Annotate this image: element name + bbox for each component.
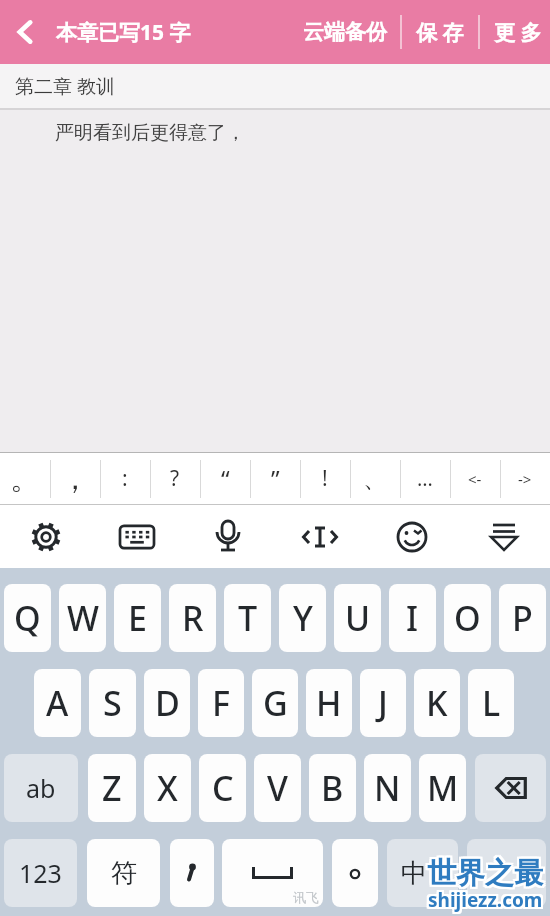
button[interactable] [91,505,182,568]
staticText: shijiezz.com [428,885,543,911]
button[interactable]: H [306,669,352,737]
button[interactable]: K [414,669,460,737]
staticText: D [155,680,180,726]
staticText: 世界之最 [429,855,545,892]
staticText: 世界之最 [427,853,543,890]
button[interactable]: S [89,669,136,737]
staticText: V [267,765,288,811]
staticText: P [512,595,533,641]
button[interactable]: 、 [350,453,400,504]
staticText: B [321,765,344,811]
button[interactable]: 中 [387,839,458,907]
button[interactable]: -> [500,453,550,504]
staticText: Y [293,595,313,641]
button[interactable]: A [34,669,81,737]
button[interactable]: 更 多 [480,0,550,64]
staticText: shijiezz.com [426,885,541,911]
button[interactable] [366,505,458,568]
staticText: 、 [363,464,387,494]
button[interactable]: 。 [0,453,50,504]
button[interactable]: T [224,584,271,652]
button[interactable]: V [254,754,301,822]
staticText: shijiezz.com [426,887,541,913]
button[interactable]: 云端备份 [290,0,400,64]
button[interactable]: C [199,754,246,822]
button[interactable] [0,505,91,568]
staticText: 中 [401,857,427,890]
button[interactable]: J [360,669,406,737]
button[interactable]: N [364,754,411,822]
staticText: : [122,464,128,493]
button[interactable]: ” [250,453,300,504]
button[interactable]: W [59,584,106,652]
button[interactable] [274,505,366,568]
button[interactable]: ! [300,453,350,504]
button[interactable]: Q [4,584,51,652]
staticText: U [345,595,371,641]
button[interactable]: X [144,754,191,822]
staticText: shijiezz.com [428,889,543,915]
staticText: shijiezz.com [430,885,545,911]
button[interactable]: D [144,669,190,737]
button[interactable]: F [198,669,244,737]
button[interactable] [182,505,274,568]
staticText: F [212,680,230,726]
button[interactable]: I [389,584,436,652]
button[interactable]: “ [200,453,250,504]
staticText: R [182,595,204,641]
staticText: H [316,680,342,726]
button[interactable]: 保 存 [402,0,478,64]
staticText: 讯飞 [293,889,319,905]
staticText: ” [271,462,280,495]
button[interactable]: : [100,453,150,504]
staticText: -> [518,469,532,489]
staticText: 保 存 [416,18,464,47]
staticText: 世界之最 [425,857,541,894]
button[interactable]: ab [4,754,78,822]
button[interactable] [332,839,378,907]
button[interactable]: B [309,754,356,822]
button[interactable]: P [499,584,546,652]
staticText: 世界之最 [429,853,545,890]
button[interactable]: ， [50,453,100,504]
button[interactable]: U [334,584,381,652]
staticText: ! [322,464,328,493]
button[interactable] [0,0,50,64]
button[interactable]: Z [88,754,136,822]
button[interactable]: Y [279,584,326,652]
staticText: T [238,595,258,641]
staticText: 。 [10,460,40,498]
staticText: E [128,595,147,641]
staticText: ab [26,771,56,805]
button[interactable]: O [444,584,491,652]
staticText: M [427,765,459,811]
staticText: O [454,595,481,641]
staticText: Q [14,595,41,641]
staticText: 世界之最 [425,855,541,892]
staticText: L [482,680,501,726]
button[interactable] [170,839,214,907]
staticText: 世界之最 [427,857,543,894]
button[interactable] [458,505,550,568]
button[interactable]: 123 [4,839,77,907]
staticText: shijiezz.com [428,887,543,913]
button[interactable]: … [400,453,450,504]
button[interactable]: E [114,584,161,652]
staticText: 云端备份 [303,19,387,45]
staticText: “ [221,462,230,495]
staticText: G [263,680,288,726]
button[interactable] [475,754,546,822]
button[interactable]: R [169,584,216,652]
button[interactable]: <- [450,453,500,504]
staticText: <- [468,469,482,489]
button[interactable]: G [252,669,298,737]
button[interactable]: 讯飞 [222,839,323,907]
staticText: ? [170,464,180,493]
button[interactable] [467,839,546,907]
button[interactable]: 符 [87,839,160,907]
button[interactable]: M [419,754,466,822]
staticText: A [46,680,69,726]
staticText: K [426,680,448,726]
button[interactable]: ? [150,453,200,504]
button[interactable]: L [468,669,514,737]
